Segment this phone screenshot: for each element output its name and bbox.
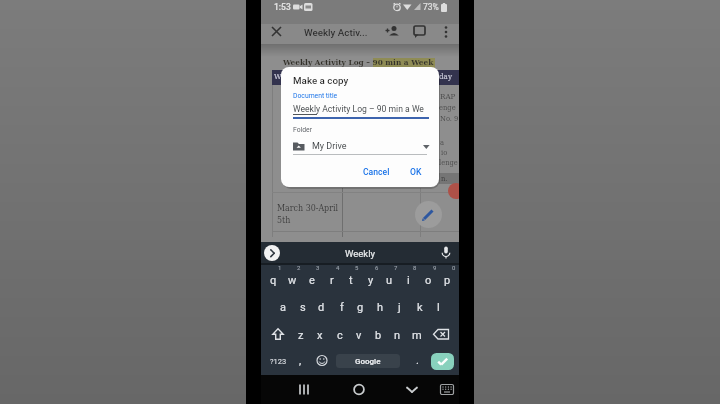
staticText: . xyxy=(416,354,419,367)
button[interactable]: h xyxy=(371,298,390,316)
button[interactable]: s xyxy=(293,298,312,316)
staticText: n. xyxy=(441,174,448,183)
staticText: a xyxy=(280,301,286,314)
button[interactable] xyxy=(432,326,452,344)
staticText: RAP xyxy=(440,92,456,101)
staticText: b xyxy=(375,329,382,342)
button[interactable] xyxy=(295,379,313,400)
button[interactable] xyxy=(350,379,368,400)
button[interactable]: c xyxy=(330,326,349,344)
staticText: x xyxy=(317,329,323,342)
button[interactable] xyxy=(343,244,377,263)
button[interactable] xyxy=(440,24,452,44)
button[interactable]: j xyxy=(390,298,409,316)
button[interactable]: e xyxy=(302,271,321,289)
staticText: Make a copy xyxy=(293,75,349,86)
staticText: g xyxy=(357,301,364,314)
staticText: 4 xyxy=(336,264,340,271)
staticText: h xyxy=(377,301,384,314)
button[interactable]: r xyxy=(322,271,341,289)
staticText: l xyxy=(437,301,440,314)
button[interactable] xyxy=(415,201,442,228)
staticText: ?123 xyxy=(270,357,287,366)
staticText: Weekly Activity Log – 90 min a We xyxy=(293,104,424,114)
staticText: d xyxy=(318,301,325,314)
button[interactable]: o xyxy=(419,271,438,289)
staticText: k xyxy=(417,301,423,314)
button[interactable]: d xyxy=(312,298,331,316)
button[interactable] xyxy=(403,379,421,400)
staticText: 73% xyxy=(423,2,439,12)
staticText: W xyxy=(274,72,282,81)
staticText: day xyxy=(439,72,452,81)
staticText: j xyxy=(398,301,401,314)
button[interactable] xyxy=(268,353,288,369)
button[interactable]: My Drive xyxy=(293,138,429,154)
staticText: s xyxy=(300,301,306,314)
staticText: Google xyxy=(355,357,381,366)
staticText: Folder xyxy=(293,126,312,134)
staticText: e xyxy=(309,274,315,287)
button[interactable]: Google xyxy=(336,354,400,368)
button[interactable]: v xyxy=(349,326,368,344)
staticText: Weekly Activity Log – 90 min a Week xyxy=(283,57,434,67)
staticText: y xyxy=(368,274,374,287)
button[interactable]: l xyxy=(429,298,448,316)
button[interactable]: t xyxy=(341,271,360,289)
staticText: 2 xyxy=(297,264,301,271)
button[interactable]: i xyxy=(399,271,418,289)
button[interactable]: g xyxy=(351,298,370,316)
button[interactable]: OK xyxy=(406,163,428,180)
staticText: r xyxy=(330,274,334,287)
button[interactable]: f xyxy=(332,298,351,316)
button[interactable]: z xyxy=(291,326,310,344)
staticText: o xyxy=(425,274,432,287)
button[interactable]: y xyxy=(361,271,380,289)
staticText: 1:53 xyxy=(274,2,291,12)
button[interactable] xyxy=(439,380,455,399)
staticText: t xyxy=(349,274,353,287)
staticText: enge xyxy=(439,103,456,112)
staticText: Weekly Activ... xyxy=(304,27,368,38)
button[interactable] xyxy=(431,353,454,370)
button[interactable]: u xyxy=(380,271,399,289)
button[interactable]: a xyxy=(273,298,292,316)
button[interactable] xyxy=(264,245,280,261)
button[interactable] xyxy=(270,24,284,44)
staticText: w xyxy=(288,274,297,287)
staticText: 9 xyxy=(433,264,437,271)
staticText: n xyxy=(394,329,401,342)
button[interactable]: k xyxy=(410,298,429,316)
staticText: z xyxy=(298,329,304,342)
button[interactable]: Cancel xyxy=(360,163,394,180)
button[interactable]: p xyxy=(438,271,457,289)
staticText: March 30-April xyxy=(277,203,339,213)
button[interactable]: b xyxy=(369,326,388,344)
staticText: No. 9 xyxy=(440,114,459,123)
staticText: p xyxy=(444,274,451,287)
staticText: io xyxy=(441,148,448,157)
button[interactable] xyxy=(439,245,453,262)
button[interactable]: Weekly Activity Log – 90 min a We xyxy=(293,102,429,118)
button[interactable]: m xyxy=(407,326,426,344)
button[interactable] xyxy=(315,353,329,368)
staticText: My Drive xyxy=(312,141,347,152)
staticText: 7 xyxy=(394,264,398,271)
staticText: 1 xyxy=(278,264,282,271)
button[interactable] xyxy=(269,326,287,344)
staticText: OK xyxy=(410,167,422,177)
button[interactable]: , xyxy=(291,351,310,369)
staticText: 8 xyxy=(413,264,417,271)
button[interactable] xyxy=(413,24,427,44)
button[interactable] xyxy=(385,24,401,44)
staticText: Document title xyxy=(293,92,338,100)
staticText: , xyxy=(299,354,302,367)
staticText: 0 xyxy=(452,264,456,271)
button[interactable]: x xyxy=(310,326,329,344)
button[interactable]: w xyxy=(283,271,302,289)
staticText: 5th xyxy=(277,215,291,225)
button[interactable]: n xyxy=(388,326,407,344)
staticText: m xyxy=(412,329,422,342)
button[interactable]: q xyxy=(264,271,283,289)
button[interactable]: . xyxy=(408,351,427,369)
